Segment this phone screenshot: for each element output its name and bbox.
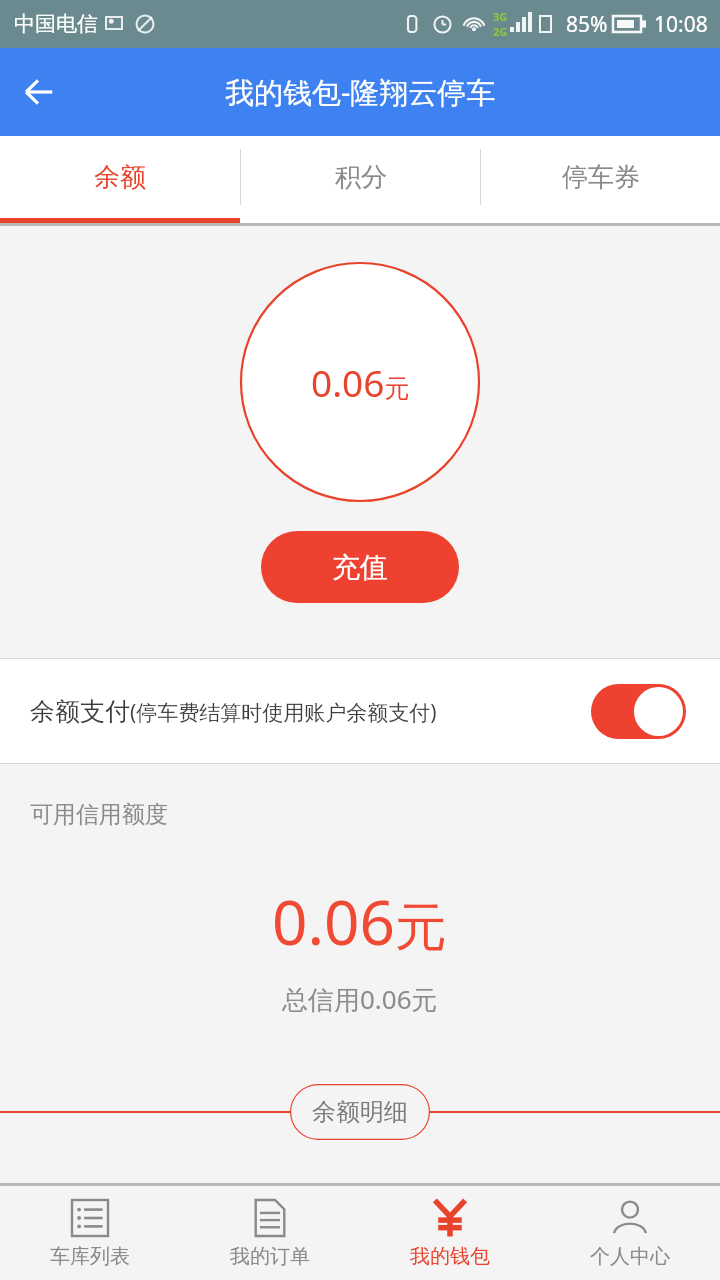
button[interactable]: 停车券 bbox=[481, 136, 720, 218]
button[interactable]: 我的订单 bbox=[180, 1186, 360, 1280]
staticText: 我的钱包-隆翔云停车 bbox=[225, 72, 496, 112]
staticText: 85% bbox=[566, 10, 608, 39]
button[interactable]: 车库列表 bbox=[0, 1186, 180, 1280]
button[interactable]: 余额明细 bbox=[290, 1084, 430, 1140]
staticText: 充值 bbox=[332, 550, 388, 585]
staticText: 10:08 bbox=[654, 10, 708, 39]
staticText: 个人中心 bbox=[590, 1244, 670, 1269]
staticText: 中国电信 bbox=[14, 11, 98, 37]
staticText: 余额明细 bbox=[312, 1097, 408, 1127]
button[interactable]: Balance payment toggle bbox=[591, 684, 686, 739]
staticText: 2G bbox=[493, 24, 508, 39]
button[interactable]: 积分 bbox=[241, 136, 480, 218]
button[interactable]: 充值 bbox=[261, 531, 459, 603]
staticText: 3G bbox=[493, 9, 508, 24]
staticText: 我的订单 bbox=[230, 1244, 310, 1269]
staticText: 0.06元 bbox=[311, 357, 410, 407]
button[interactable]: 个人中心 bbox=[540, 1186, 720, 1280]
staticText: 我的钱包 bbox=[410, 1244, 490, 1269]
staticText: 车库列表 bbox=[50, 1244, 130, 1269]
staticText: 余额支付(停车费结算时使用账户余额支付) bbox=[30, 696, 437, 727]
staticText: 余额 bbox=[94, 161, 146, 194]
staticText: 可用信用额度 bbox=[30, 800, 168, 829]
staticText: 总信用0.06元 bbox=[282, 981, 438, 1017]
staticText: 积分 bbox=[335, 161, 387, 194]
button[interactable]: 余额 bbox=[0, 136, 240, 218]
button[interactable]: 我的钱包 bbox=[360, 1186, 540, 1280]
button[interactable]: Back bbox=[10, 64, 66, 120]
staticText: 停车券 bbox=[562, 161, 640, 194]
staticText: 0.06元 bbox=[272, 879, 448, 963]
